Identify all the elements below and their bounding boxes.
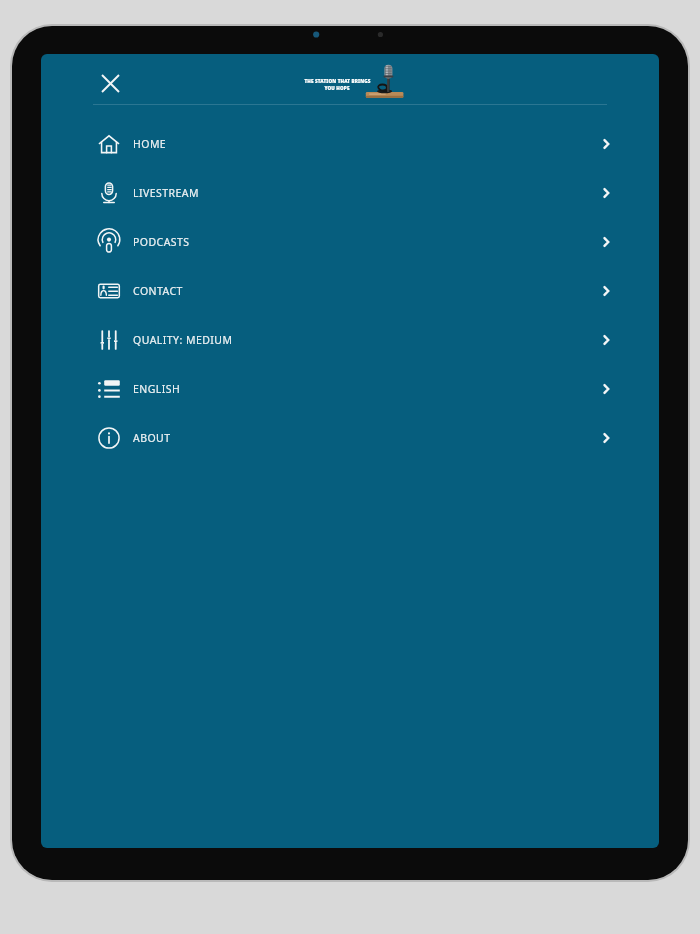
button[interactable]: Podcasts xyxy=(41,217,659,266)
button[interactable]: Quality xyxy=(41,315,659,364)
button[interactable]: Home xyxy=(41,119,659,168)
button[interactable]: About xyxy=(41,413,659,462)
other: About xyxy=(96,425,122,451)
staticText: HOME xyxy=(133,137,167,151)
button[interactable]: Station logo xyxy=(301,63,409,103)
staticText: QUALITY: MEDIUM xyxy=(133,333,233,347)
other: Quality xyxy=(96,327,122,353)
button[interactable]: Contact xyxy=(41,266,659,315)
button[interactable]: Livestream xyxy=(41,168,659,217)
other: Home xyxy=(96,131,122,157)
other: Podcasts xyxy=(96,229,122,255)
staticText: THE STATION THAT BRINGS xyxy=(304,78,371,84)
staticText: ABOUT xyxy=(133,431,171,445)
staticText: LIVESTREAM xyxy=(133,186,199,200)
staticText: CONTACT xyxy=(133,284,183,298)
other: Language xyxy=(96,376,122,402)
button[interactable]: Language xyxy=(41,364,659,413)
button[interactable]: Close menu xyxy=(93,66,127,100)
other: Contact xyxy=(96,278,122,304)
staticText: PODCASTS xyxy=(133,235,190,249)
staticText: ENGLISH xyxy=(133,382,181,396)
other: Livestream xyxy=(96,180,122,206)
staticText: YOU HOPE xyxy=(324,85,350,91)
